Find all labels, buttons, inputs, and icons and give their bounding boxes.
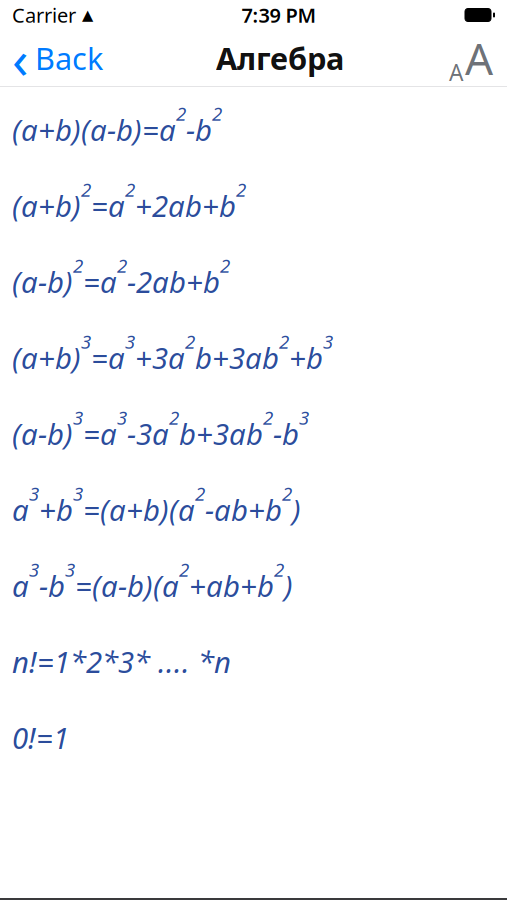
staticText: -b <box>186 110 212 149</box>
staticText: 2 <box>179 557 189 582</box>
staticText: 3 <box>29 481 39 506</box>
button[interactable]: 0!=1 <box>0 695 507 771</box>
staticText: +2ab+b <box>135 186 236 225</box>
staticText: 2 <box>117 253 127 278</box>
staticText: -b <box>273 414 299 453</box>
staticText: A <box>465 29 493 87</box>
staticText: -3a <box>127 414 169 453</box>
staticText: 3 <box>73 405 83 430</box>
staticText: A <box>449 57 463 87</box>
staticText: 2 <box>169 405 179 430</box>
staticText: 3 <box>81 329 91 354</box>
staticText: 2 <box>236 177 246 202</box>
button[interactable]: Text size <box>449 30 507 86</box>
staticText: 7:39 PM <box>241 2 316 28</box>
staticText: (a+b) <box>12 186 81 225</box>
staticText: =(a-b)(a <box>75 566 179 605</box>
staticText: b+3ab <box>179 414 263 453</box>
staticText: (a-b) <box>12 262 73 301</box>
staticText: 3 <box>29 557 39 582</box>
staticText: +3a <box>135 338 185 377</box>
staticText: ▲ <box>82 7 93 23</box>
staticText: (a+b) <box>12 338 81 377</box>
staticText: 2 <box>81 177 91 202</box>
staticText: 2 <box>212 101 222 126</box>
staticText: Back <box>35 38 103 78</box>
staticText: -b <box>39 566 65 605</box>
staticText: b+3ab <box>195 338 279 377</box>
button[interactable]: (a+b)(a-b)=a <box>0 87 507 163</box>
staticText: 2 <box>185 329 195 354</box>
staticText: -2ab+b <box>127 262 220 301</box>
staticText: 2 <box>125 177 135 202</box>
staticText: =a <box>83 262 117 301</box>
button[interactable]: (a-b) <box>0 239 507 315</box>
staticText: =a <box>91 338 125 377</box>
staticText: =(a+b)(a <box>83 490 195 529</box>
button[interactable]: n!=1*2*3* .... *n <box>0 619 507 695</box>
staticText: +b <box>289 338 323 377</box>
staticText: 3 <box>299 405 309 430</box>
staticText: =a <box>83 414 117 453</box>
staticText: 3 <box>125 329 135 354</box>
staticText: +b <box>39 490 73 529</box>
staticText: ) <box>292 490 301 529</box>
staticText: =a <box>91 186 125 225</box>
staticText: Алгебра <box>216 38 344 78</box>
staticText: 2 <box>220 253 230 278</box>
staticText: 3 <box>65 557 75 582</box>
staticText: ‹ <box>12 23 29 93</box>
staticText: a <box>12 566 29 605</box>
button[interactable]: a <box>0 467 507 543</box>
button[interactable]: (a-b) <box>0 391 507 467</box>
staticText: a <box>12 490 29 529</box>
staticText: +ab+b <box>189 566 274 605</box>
staticText: 3 <box>323 329 333 354</box>
staticText: 2 <box>73 253 83 278</box>
staticText: -ab+b <box>205 490 282 529</box>
staticText: 2 <box>176 101 186 126</box>
staticText: 2 <box>195 481 205 506</box>
staticText: 2 <box>274 557 284 582</box>
button[interactable]: a <box>0 543 507 619</box>
staticText: 2 <box>279 329 289 354</box>
button[interactable]: ‹ <box>0 30 111 86</box>
staticText: n!=1*2*3* .... *n <box>12 642 231 681</box>
staticText: ) <box>284 566 293 605</box>
staticText: 3 <box>73 481 83 506</box>
staticText: 0!=1 <box>12 718 69 757</box>
button[interactable]: (a+b) <box>0 163 507 239</box>
staticText: 2 <box>282 481 292 506</box>
staticText: Carrier <box>12 2 76 28</box>
staticText: 2 <box>263 405 273 430</box>
button[interactable]: (a+b) <box>0 315 507 391</box>
staticText: (a-b) <box>12 414 73 453</box>
staticText: 3 <box>117 405 127 430</box>
staticText: (a+b)(a-b)=a <box>12 110 176 149</box>
